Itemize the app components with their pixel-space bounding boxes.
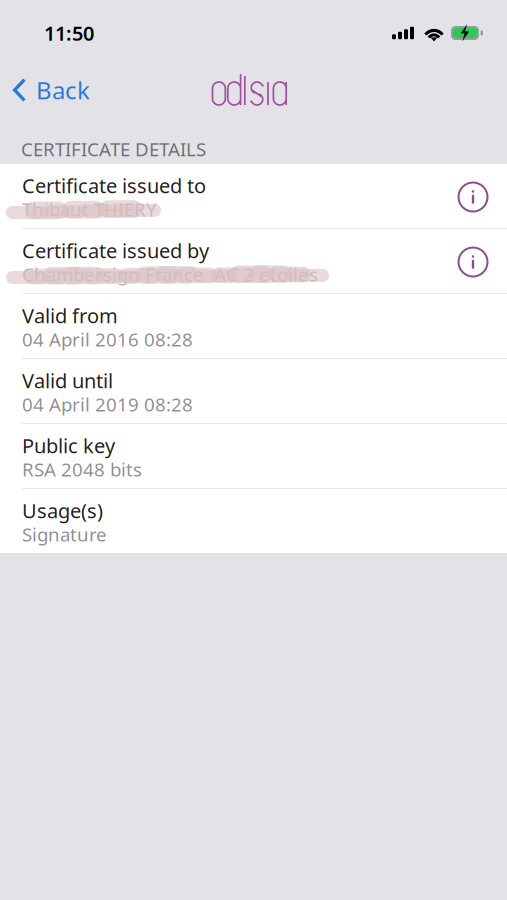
staticText: Valid from xyxy=(22,302,118,329)
button[interactable]: More information about Certificate issue… xyxy=(457,181,489,213)
staticText: Thibaut THIERY xyxy=(22,197,157,222)
staticText: 11:50 xyxy=(44,20,94,46)
staticText: Back xyxy=(36,74,90,106)
staticText: RSA 2048 bits xyxy=(22,457,142,482)
button[interactable]: Back xyxy=(0,64,102,116)
staticText: Signature xyxy=(22,522,107,547)
staticText: Valid until xyxy=(22,367,113,394)
staticText: 04 April 2019 08:28 xyxy=(22,392,193,417)
staticText: Usage(s) xyxy=(22,497,103,524)
staticText: Certificate issued to xyxy=(22,172,206,199)
staticText: Public key xyxy=(22,432,115,459)
button[interactable]: More information about Certificate issue… xyxy=(457,246,489,278)
staticText: CERTIFICATE DETAILS xyxy=(21,137,206,161)
staticText: Certificate issued by xyxy=(22,237,209,264)
staticText: Chambersign France AC 2 etoiles xyxy=(22,262,318,287)
staticText: 04 April 2016 08:28 xyxy=(22,327,193,352)
